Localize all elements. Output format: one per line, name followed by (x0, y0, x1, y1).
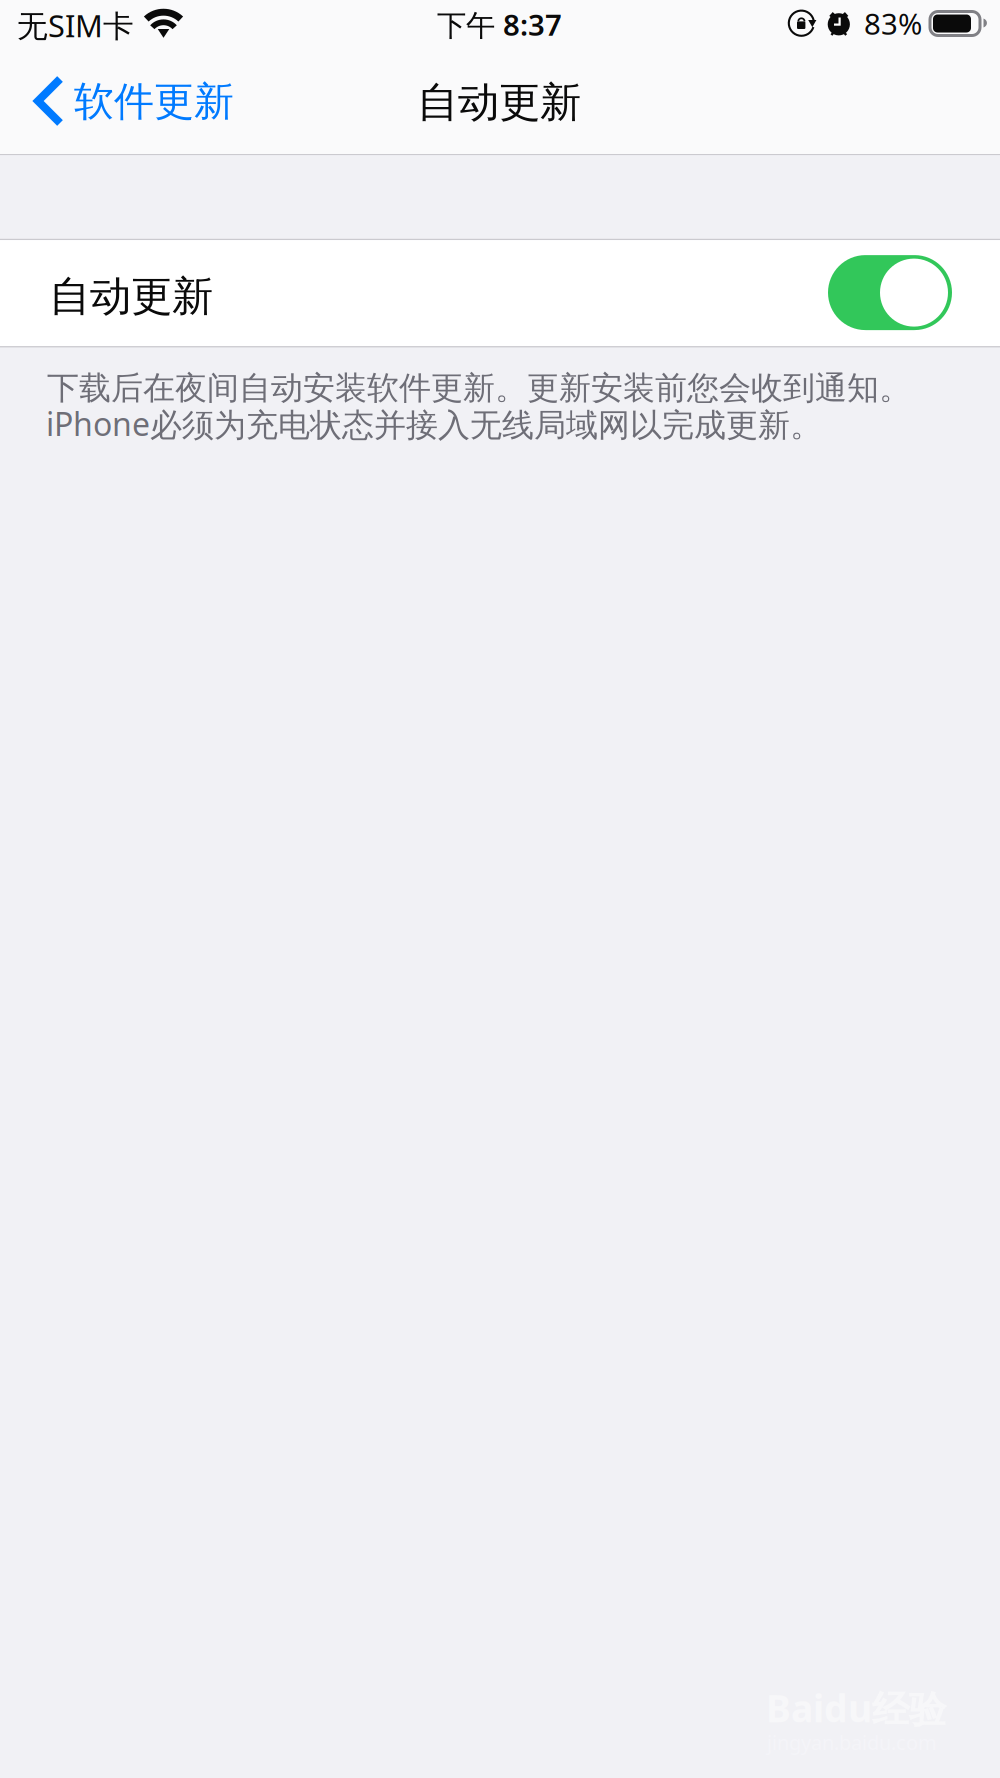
staticText: 下午 8:37 (437, 5, 562, 44)
staticText: iPhone必须为充电状态并接入无线局域网以完成更新。 (46, 402, 822, 445)
staticText: 无SIM卡 (17, 5, 134, 46)
button[interactable]: 自动更新 (0, 240, 1000, 346)
staticText: 软件更新 (74, 77, 234, 126)
staticText: 83% (864, 4, 922, 43)
staticText: 下载后在夜间自动安装软件更新。更新安装前您会收到通知。 (47, 368, 911, 408)
button[interactable]: 自动更新开关 (828, 255, 952, 330)
staticText: 自动更新 (49, 271, 213, 322)
staticText: 自动更新 (417, 77, 581, 128)
button[interactable]: 软件更新 (0, 60, 250, 154)
